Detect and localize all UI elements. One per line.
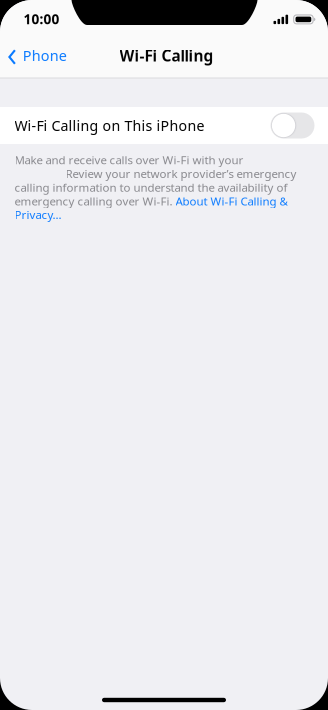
button[interactable]: About Wi-Fi Calling & — [175, 193, 287, 209]
staticText: calling information to understand the av… — [14, 179, 287, 195]
staticText: Make and receive calls over Wi-Fi with y… — [14, 152, 243, 168]
button[interactable]: Privacy... — [14, 208, 328, 221]
staticText: emergency calling over Wi-Fi. — [14, 193, 175, 209]
button[interactable]: Phone — [0, 37, 77, 74]
staticText: Wi-Fi Calling on This iPhone — [14, 116, 204, 135]
staticText: About Wi-Fi Calling & — [175, 193, 287, 209]
staticText: Phone — [23, 46, 67, 65]
staticText: 10:00 — [23, 10, 59, 28]
staticText: Wi-Fi Calling — [119, 45, 213, 66]
staticText: Review your network provider’s emergency — [65, 166, 296, 181]
staticText: Privacy... — [14, 207, 61, 222]
button[interactable]: Wi-Fi Calling on This iPhone — [0, 107, 328, 144]
